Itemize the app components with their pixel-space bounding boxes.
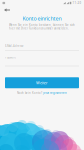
staticText: Konto einrichten xyxy=(22,15,61,22)
button[interactable]: Noch kein Konto? xyxy=(0,91,84,95)
button[interactable]: Weiter xyxy=(5,77,79,88)
staticText: E-Mail-Adresse xyxy=(5,44,24,48)
button[interactable]: Back xyxy=(1,6,13,14)
staticText: Wenn Sie ein Konto besitzen, können Sie … xyxy=(9,23,75,30)
staticText: 11:20 xyxy=(72,1,81,5)
staticText: Noch kein Konto? xyxy=(17,91,42,95)
staticText: Jetzt registrieren xyxy=(43,91,67,95)
staticText: Weiter xyxy=(36,80,48,85)
staticText: Passwort xyxy=(5,56,16,59)
